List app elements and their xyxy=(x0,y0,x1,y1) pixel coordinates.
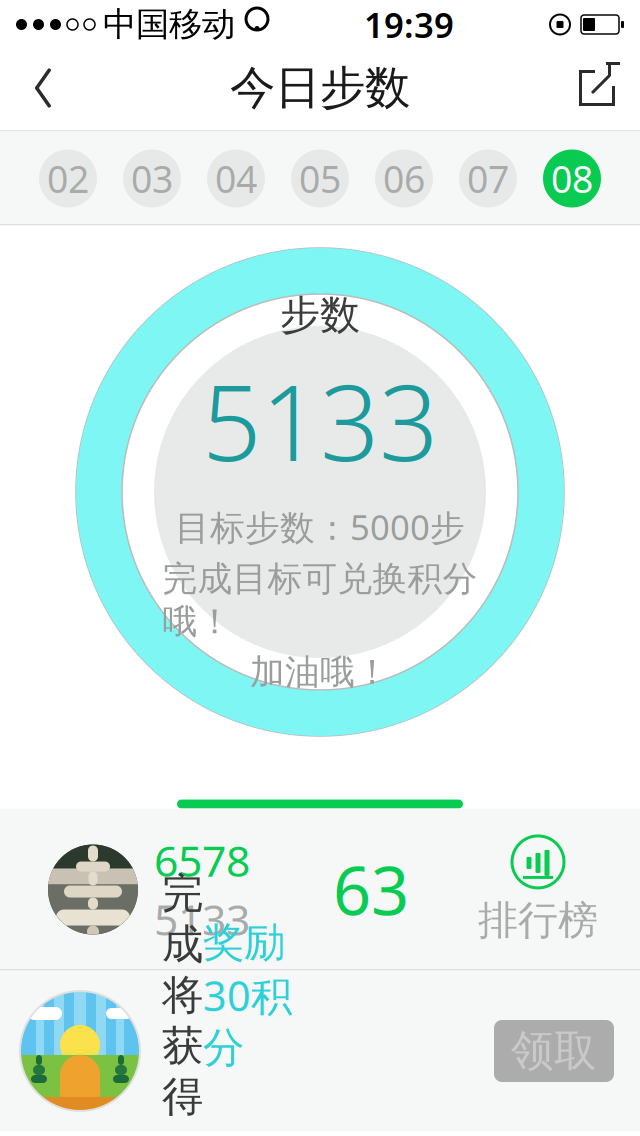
staticText: 63 xyxy=(333,845,409,934)
staticText: 6578 xyxy=(154,832,250,888)
staticText: 完成目标可兑换积分哦！ xyxy=(162,558,477,643)
button[interactable]: 分享 xyxy=(560,44,634,131)
staticText: 中国移动 xyxy=(103,4,235,45)
staticText: 02 xyxy=(47,154,89,203)
staticText: 目标步数：5000步 xyxy=(175,504,465,550)
button[interactable]: 6578 xyxy=(0,832,264,947)
staticText: 07 xyxy=(467,154,509,203)
staticText: 领取 xyxy=(511,1025,597,1077)
button[interactable]: 07 xyxy=(446,131,530,225)
staticText: 05 xyxy=(299,154,341,203)
staticText: 排行榜 xyxy=(478,896,598,945)
button[interactable]: 返回 xyxy=(6,44,80,131)
staticText: 19:39 xyxy=(364,1,454,47)
staticText: 5133 xyxy=(154,890,250,947)
staticText: 04 xyxy=(215,154,257,203)
staticText: 奖励30积分 xyxy=(203,917,292,1073)
staticText: 06 xyxy=(383,154,425,203)
button[interactable]: 领取 xyxy=(494,1020,614,1082)
staticText: 5133 xyxy=(202,352,438,490)
button[interactable]: 06 xyxy=(362,131,446,225)
button[interactable]: 排行榜 xyxy=(478,834,640,945)
staticText: 03 xyxy=(131,154,173,203)
staticText: 完成将获得 xyxy=(162,868,203,1122)
button[interactable]: 08 xyxy=(530,131,614,225)
button[interactable]: 02 xyxy=(26,131,110,225)
staticText: 加油哦！ xyxy=(250,651,390,693)
staticText: 步数 xyxy=(280,290,360,340)
button[interactable]: 05 xyxy=(278,131,362,225)
button[interactable]: 03 xyxy=(110,131,194,225)
button[interactable]: 04 xyxy=(194,131,278,225)
staticText: 08 xyxy=(551,154,593,203)
staticText: 今日步数 xyxy=(230,60,410,116)
